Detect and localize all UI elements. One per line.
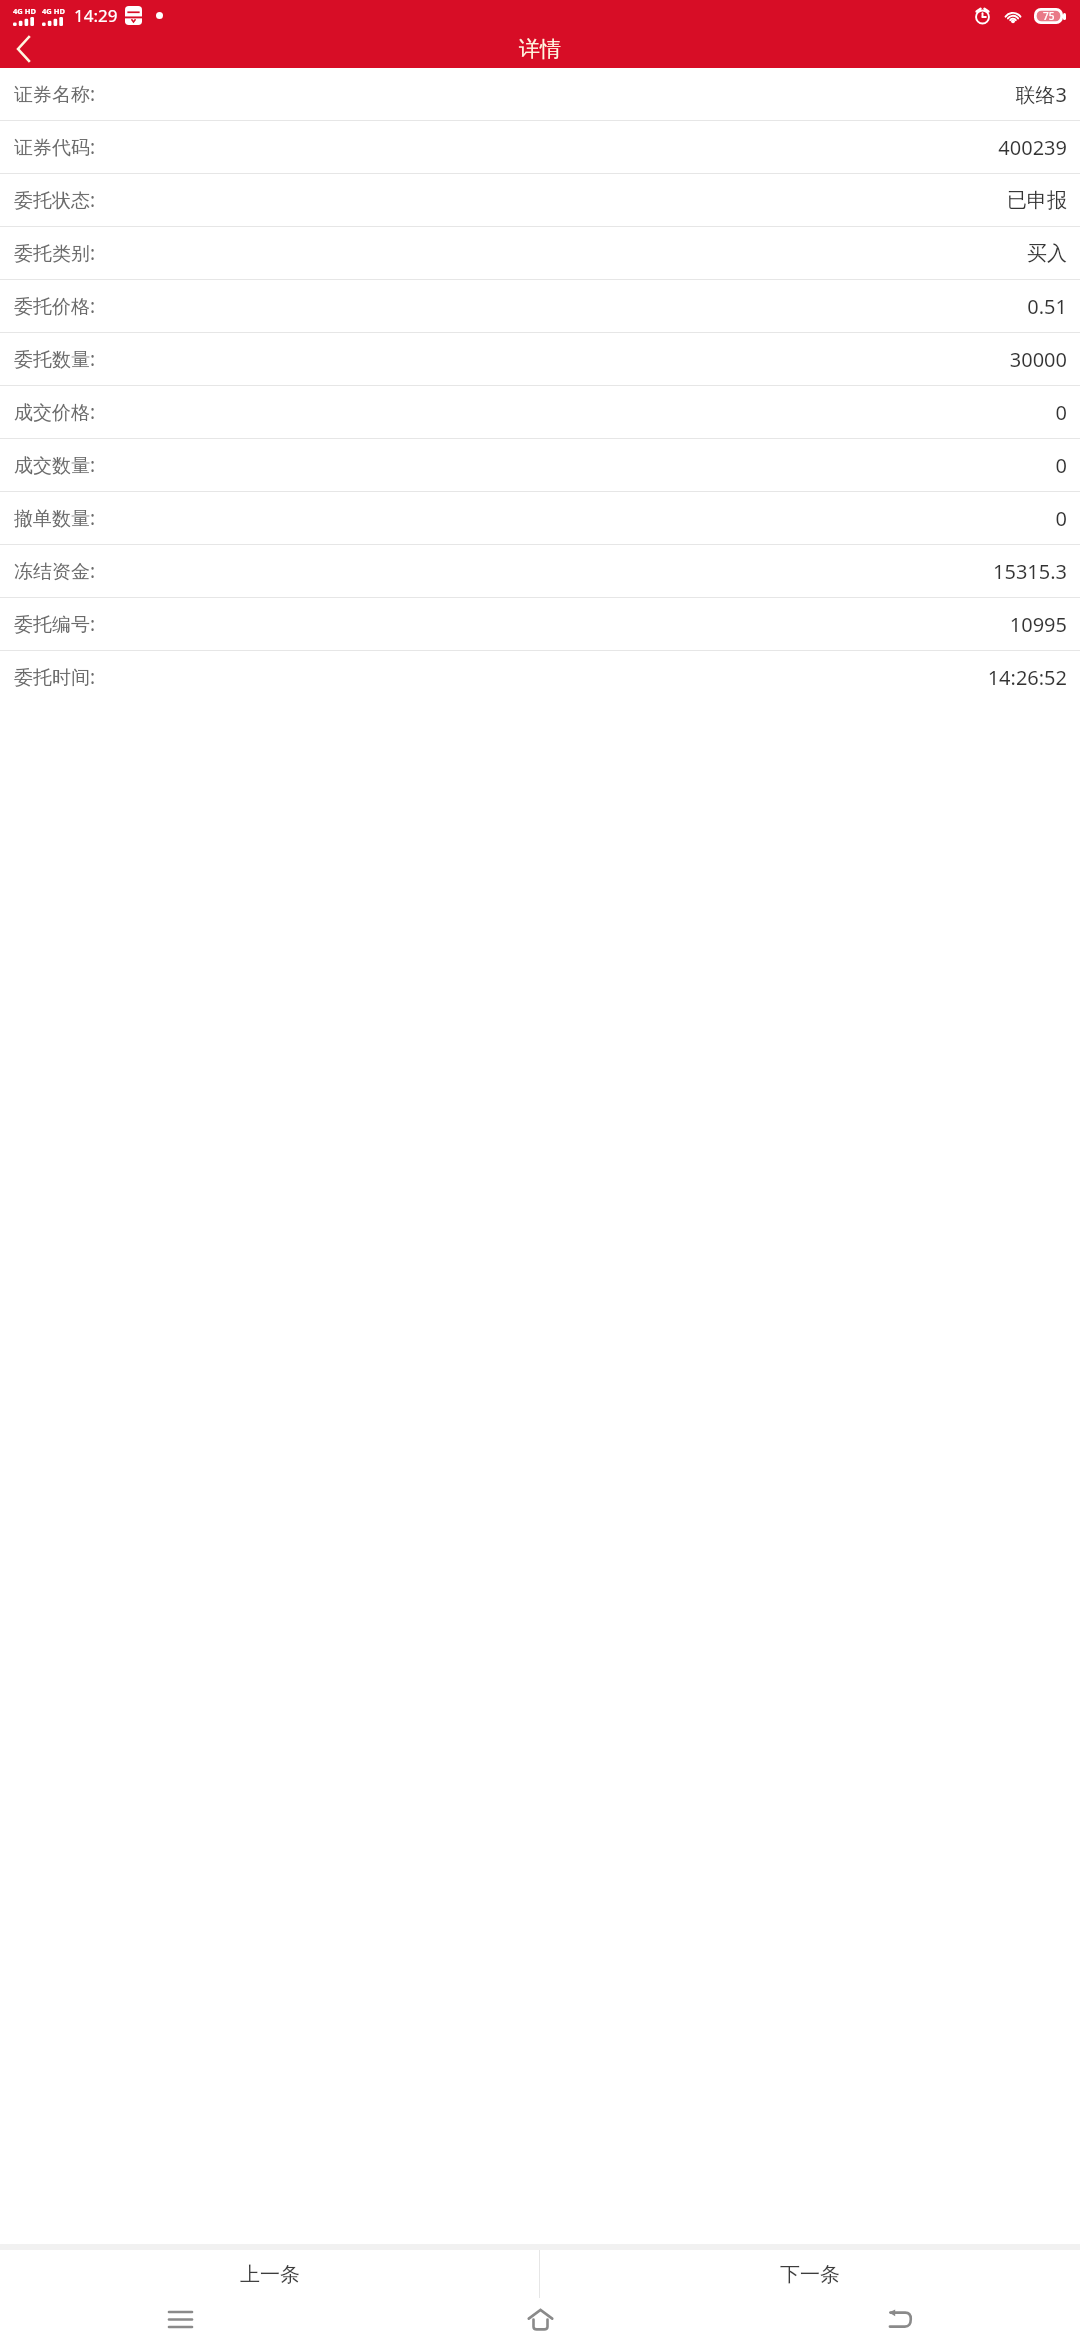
button[interactable]: 证券名称: bbox=[0, 68, 1080, 120]
button[interactable]: 上一条 bbox=[0, 2250, 539, 2298]
staticText: 14:29 bbox=[74, 4, 118, 27]
button[interactable]: 委托状态: bbox=[0, 174, 1080, 226]
button[interactable]: 委托时间: bbox=[0, 651, 1080, 703]
staticText: 400239 bbox=[998, 134, 1067, 161]
staticText: 4G HD bbox=[42, 6, 65, 16]
staticText: 详情 bbox=[519, 36, 561, 62]
button[interactable]: 委托数量: bbox=[0, 333, 1080, 385]
other: Alarm set bbox=[973, 6, 992, 25]
staticText: 委托类别: bbox=[14, 240, 96, 266]
button[interactable]: 委托价格: bbox=[0, 280, 1080, 332]
button[interactable]: 下一条 bbox=[540, 2250, 1080, 2298]
button[interactable]: 委托编号: bbox=[0, 598, 1080, 650]
staticText: 冻结资金: bbox=[14, 558, 96, 584]
staticText: 委托时间: bbox=[14, 664, 96, 690]
staticText: 10995 bbox=[1009, 611, 1067, 638]
button[interactable]: Back bbox=[0, 30, 46, 68]
staticText: 委托状态: bbox=[14, 187, 96, 213]
staticText: 14:26:52 bbox=[987, 664, 1067, 691]
staticText: 上一条 bbox=[240, 2262, 300, 2287]
button[interactable]: 成交价格: bbox=[0, 386, 1080, 438]
staticText: 4G HD bbox=[13, 6, 36, 16]
staticText: 委托编号: bbox=[14, 611, 96, 637]
staticText: 联络3 bbox=[1015, 81, 1067, 108]
button[interactable]: Home bbox=[360, 2298, 720, 2340]
staticText: 0 bbox=[1055, 505, 1067, 532]
staticText: 买入 bbox=[1027, 241, 1067, 266]
staticText: 15315.3 bbox=[993, 558, 1067, 585]
button[interactable]: 冻结资金: bbox=[0, 545, 1080, 597]
button[interactable]: 撤单数量: bbox=[0, 492, 1080, 544]
button[interactable]: 委托类别: bbox=[0, 227, 1080, 279]
staticText: 委托价格: bbox=[14, 293, 96, 319]
staticText: 下一条 bbox=[780, 2262, 840, 2287]
staticText: 已申报 bbox=[1007, 188, 1067, 213]
button[interactable]: 成交数量: bbox=[0, 439, 1080, 491]
staticText: 证券名称: bbox=[14, 81, 96, 107]
staticText: 成交价格: bbox=[14, 399, 96, 425]
button[interactable]: Recent apps bbox=[0, 2298, 360, 2340]
staticText: 委托数量: bbox=[14, 346, 96, 372]
staticText: 成交数量: bbox=[14, 452, 96, 478]
staticText: 0 bbox=[1055, 399, 1067, 426]
staticText: 75 bbox=[1043, 9, 1055, 23]
staticText: 撤单数量: bbox=[14, 505, 96, 531]
other: Wi-Fi connected bbox=[1003, 8, 1023, 23]
staticText: 30000 bbox=[1009, 346, 1067, 373]
button[interactable]: Back bbox=[720, 2298, 1080, 2340]
button[interactable]: 证券代码: bbox=[0, 121, 1080, 173]
staticText: 0 bbox=[1055, 452, 1067, 479]
staticText: 0.51 bbox=[1027, 293, 1067, 320]
staticText: 证券代码: bbox=[14, 134, 96, 160]
